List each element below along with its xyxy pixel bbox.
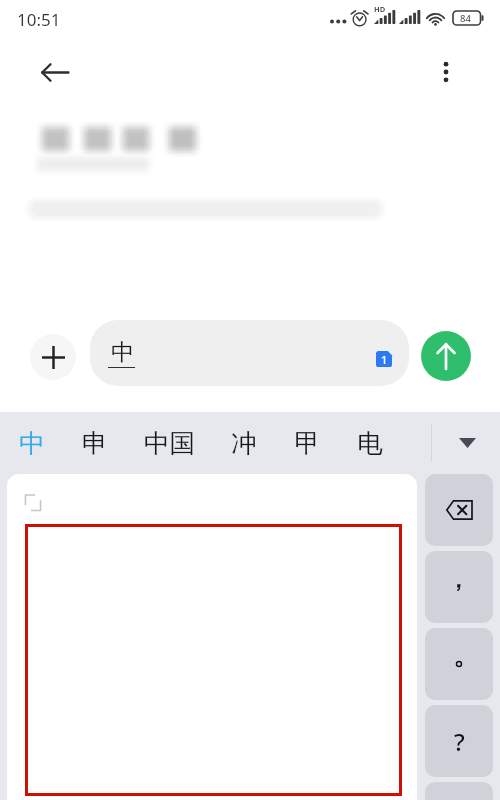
staticText: 84: [460, 12, 471, 25]
staticText: 中国: [144, 427, 195, 459]
staticText: 中: [19, 427, 45, 459]
staticText: 冲: [231, 427, 257, 459]
staticText: 电: [357, 427, 383, 459]
staticText: 1: [381, 352, 388, 367]
button[interactable]: 申: [66, 412, 124, 474]
staticText: 10:51: [17, 8, 61, 31]
staticText: ?: [454, 725, 465, 758]
button[interactable]: Send: [421, 331, 471, 381]
staticText: 甲: [294, 427, 320, 459]
button[interactable]: 电: [341, 412, 399, 474]
staticText: HD: [374, 4, 386, 14]
button[interactable]: Back: [31, 48, 79, 96]
button[interactable]: Add attachment: [30, 334, 76, 380]
button[interactable]: [425, 628, 493, 700]
staticText: 申: [82, 427, 108, 459]
button[interactable]: 中国: [126, 412, 212, 474]
button[interactable]: Handwriting area: [7, 474, 417, 800]
button[interactable]: More options: [424, 50, 468, 94]
button[interactable]: [425, 474, 493, 546]
button[interactable]: [425, 782, 493, 800]
staticText: 中: [111, 338, 134, 367]
button[interactable]: 中: [90, 320, 409, 386]
button[interactable]: [425, 551, 493, 623]
button[interactable]: Expand candidates: [434, 412, 500, 474]
button[interactable]: 甲: [278, 412, 336, 474]
button[interactable]: 中: [3, 412, 61, 474]
button[interactable]: ?: [425, 705, 493, 777]
button[interactable]: 冲: [215, 412, 273, 474]
